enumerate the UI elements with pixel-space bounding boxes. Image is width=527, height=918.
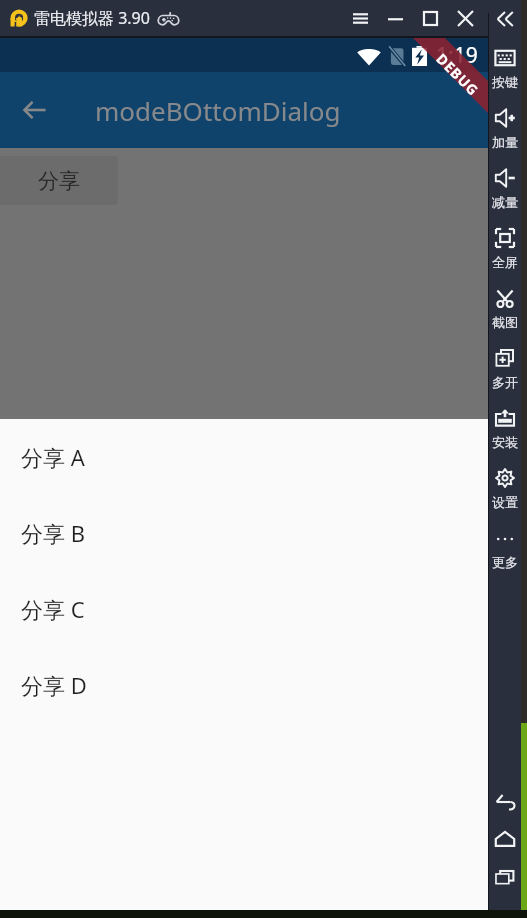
button[interactable]: 设置 [488,468,521,528]
button[interactable]: 安装 [488,408,521,468]
button[interactable]: 更多 [488,528,521,588]
staticText: 安装 [492,434,518,450]
button[interactable]: 分享 [0,156,118,205]
staticText: 减量 [492,194,518,210]
button[interactable]: 按键 [488,48,521,108]
button[interactable]: Close [448,0,483,36]
button[interactable]: Back [488,782,521,820]
button[interactable]: Back [0,72,70,148]
button[interactable]: 分享 B [0,495,488,571]
button[interactable]: Recents [488,858,521,896]
staticText: 按键 [492,74,518,90]
button[interactable]: 分享 C [0,571,488,647]
button[interactable]: 分享 A [0,419,488,495]
button[interactable]: 分享 D [0,647,488,723]
staticText: DEBUG [432,49,483,100]
staticText: 雷电模拟器 3.90 [34,7,150,29]
button[interactable]: Home [488,820,521,858]
staticText: 多开 [492,374,518,390]
button[interactable]: 多开 [488,348,521,408]
button[interactable]: 加量 [488,108,521,168]
button[interactable]: Collapse [488,10,521,28]
button[interactable]: 全屏 [488,228,521,288]
staticText: 分享 C [21,594,85,624]
staticText: 分享 [38,168,80,194]
staticText: 分享 A [21,442,85,472]
button[interactable]: Minimize [378,0,413,36]
button[interactable]: Menu [343,0,378,36]
staticText: modeBOttomDialog [95,93,341,128]
staticText: 截图 [492,314,518,330]
staticText: 1:19 [436,41,478,70]
button[interactable]: 减量 [488,168,521,228]
staticText: 全屏 [492,254,518,270]
button[interactable]: 截图 [488,288,521,348]
button[interactable]: Maximize [413,0,448,36]
staticText: 加量 [492,134,518,150]
staticText: 更多 [492,554,518,570]
staticText: 分享 D [21,670,87,700]
staticText: 设置 [492,494,518,510]
staticText: 分享 B [21,518,86,548]
